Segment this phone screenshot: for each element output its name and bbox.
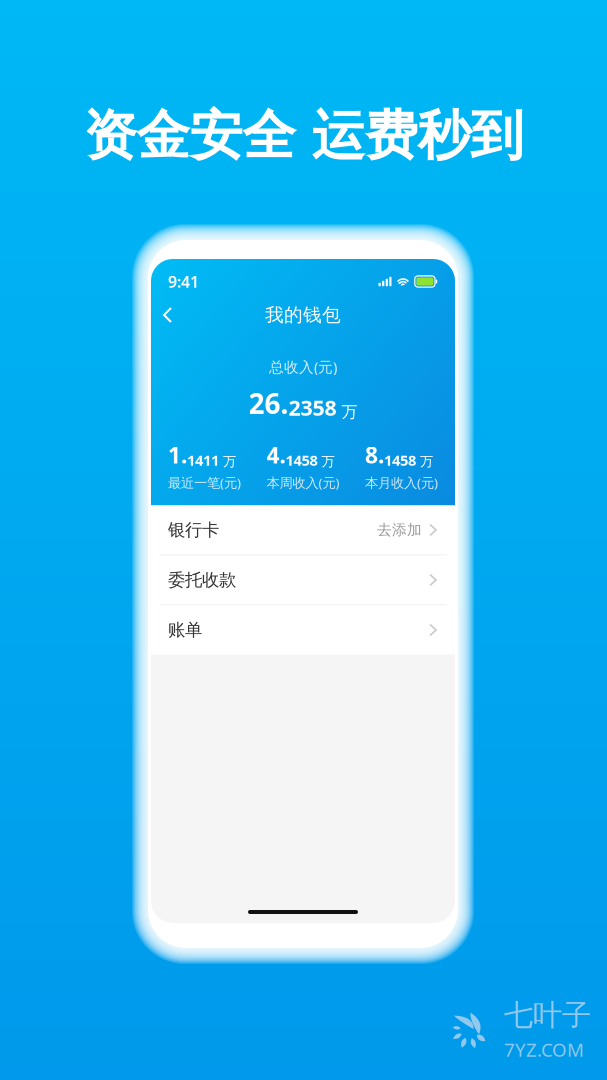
- staticText: 1458: [285, 450, 317, 470]
- staticText: 8.: [365, 440, 384, 470]
- staticText: 万: [336, 402, 357, 422]
- staticText: 银行卡: [168, 519, 219, 541]
- staticText: 9:41: [168, 271, 199, 292]
- staticText: 本月收入(元): [365, 474, 438, 491]
- staticText: 本周收入(元): [266, 474, 339, 491]
- staticText: 7YZ.COM: [504, 1037, 584, 1062]
- button[interactable]: 账单: [151, 605, 455, 654]
- staticText: 最近一笔(元): [168, 474, 241, 491]
- staticText: 1.: [168, 440, 187, 470]
- staticText: 总收入(元): [269, 357, 337, 376]
- button[interactable]: 银行卡: [151, 505, 455, 554]
- button[interactable]: 委托收款: [151, 555, 455, 604]
- staticText: 万: [416, 453, 433, 470]
- staticText: 1458: [384, 450, 416, 470]
- staticText: 4.: [266, 440, 285, 470]
- staticText: 去添加: [377, 521, 422, 539]
- staticText: 委托收款: [168, 569, 236, 591]
- staticText: 26.: [248, 384, 288, 422]
- button[interactable]: Back: [151, 297, 185, 333]
- staticText: 万: [219, 453, 236, 470]
- staticText: 2358: [288, 393, 336, 422]
- staticText: 我的钱包: [265, 303, 341, 326]
- staticText: 七叶子: [504, 997, 591, 1033]
- staticText: 账单: [168, 619, 202, 641]
- staticText: 万: [317, 453, 334, 470]
- staticText: 1411: [187, 450, 219, 470]
- staticText: 资金安全 运费秒到: [83, 103, 523, 168]
